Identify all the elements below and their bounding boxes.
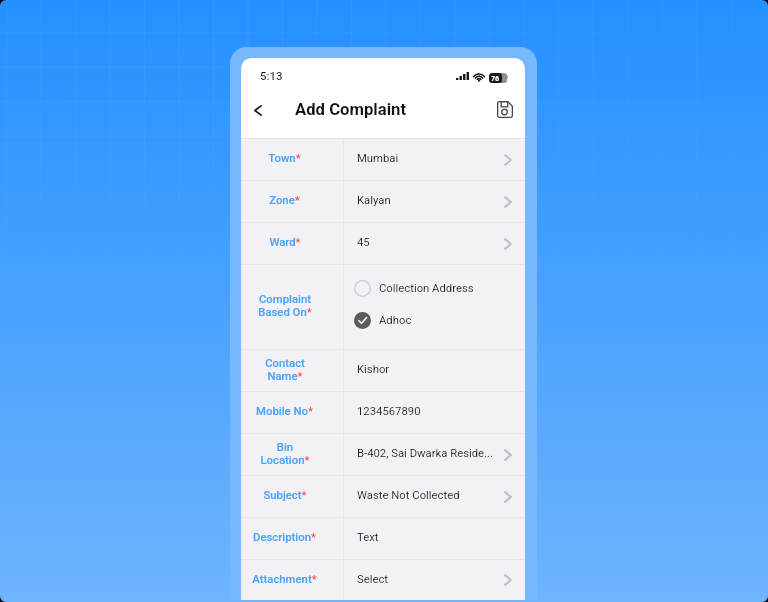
staticText: Town* [268, 151, 301, 164]
staticText: 5:13 [260, 69, 283, 82]
staticText: Bin Location* [260, 440, 310, 466]
staticText: Attachment* [252, 572, 317, 585]
button[interactable]: Attachment* [241, 560, 525, 600]
button[interactable]: Zone* [241, 181, 525, 222]
staticText: Kalyan [357, 194, 391, 207]
staticText: 1234567890 [357, 405, 421, 418]
button[interactable]: Back [242, 94, 274, 126]
staticText: Description* [253, 530, 316, 543]
staticText: Mobile No* [256, 404, 313, 417]
button[interactable]: Subject* [241, 476, 525, 517]
staticText: Contact Name* [265, 356, 305, 382]
staticText: Complaint Based On* [258, 292, 312, 318]
staticText: Select [357, 573, 389, 586]
staticText: Ward* [269, 235, 301, 248]
staticText: Waste Not Collected [357, 489, 460, 502]
staticText: 45 [357, 236, 370, 249]
staticText: Collection Address [379, 282, 474, 295]
staticText: Mumbai [357, 152, 399, 165]
button[interactable]: Description* [241, 518, 525, 559]
button[interactable]: Collection Address [354, 280, 474, 297]
button[interactable]: Bin Location* [241, 434, 525, 475]
button[interactable]: Town* [241, 139, 525, 180]
staticText: Kishor [357, 363, 390, 376]
staticText: B-402, Sai Dwarka Reside... [357, 447, 494, 460]
button[interactable]: Contact Name* [241, 350, 525, 391]
staticText: Adhoc [379, 314, 412, 327]
staticText: 76 [491, 74, 500, 82]
button[interactable]: Save [490, 94, 520, 124]
button[interactable]: Adhoc [354, 312, 412, 329]
staticText: Add Complaint [295, 100, 407, 120]
button[interactable]: Ward* [241, 223, 525, 264]
button[interactable]: Mobile No* [241, 392, 525, 433]
staticText: Subject* [263, 488, 307, 501]
staticText: Text [357, 531, 379, 544]
staticText: Zone* [269, 193, 300, 206]
